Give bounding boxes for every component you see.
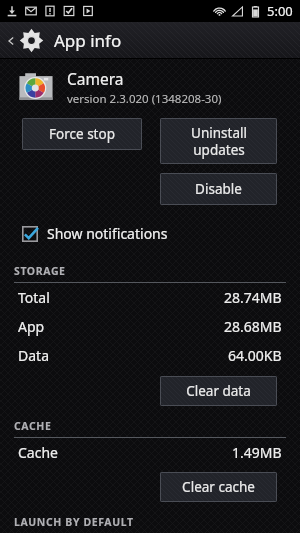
button[interactable]: Data: [0, 341, 300, 370]
button[interactable]: App: [0, 312, 300, 341]
staticText: LAUNCH BY DEFAULT: [14, 515, 134, 529]
staticText: Show notifications: [47, 224, 168, 243]
button[interactable]: Uninstall updates: [160, 118, 277, 164]
button[interactable]: Clear data: [160, 376, 277, 406]
staticText: 28.74MB: [224, 288, 282, 307]
staticText: Clear data: [186, 382, 251, 400]
staticText: Camera: [67, 68, 124, 89]
staticText: App: [18, 317, 45, 336]
staticText: Total: [18, 288, 50, 307]
staticText: Disable: [195, 180, 242, 198]
staticText: version 2.3.020 (1348208-30): [67, 91, 222, 107]
button[interactable]: Force stop: [22, 118, 142, 150]
staticText: 1.49MB: [232, 443, 282, 462]
staticText: Clear cache: [182, 478, 255, 496]
staticText: App info: [54, 29, 122, 52]
button[interactable]: Up, App info: [0, 28, 132, 53]
staticText: 64.00KB: [228, 346, 282, 365]
staticText: Data: [18, 346, 49, 365]
staticText: Uninstall updates: [191, 124, 247, 159]
staticText: Force stop: [49, 125, 115, 143]
staticText: 5:00: [267, 2, 293, 20]
button[interactable]: Total: [0, 283, 300, 312]
button[interactable]: Disable: [160, 173, 277, 205]
staticText: STORAGE: [14, 264, 66, 278]
staticText: Cache: [18, 443, 58, 462]
button[interactable]: Cache: [0, 438, 300, 467]
button[interactable]: Clear cache: [160, 472, 277, 502]
button[interactable]: Show notifications: [22, 221, 176, 246]
staticText: CACHE: [14, 419, 52, 433]
staticText: 28.68MB: [224, 317, 282, 336]
